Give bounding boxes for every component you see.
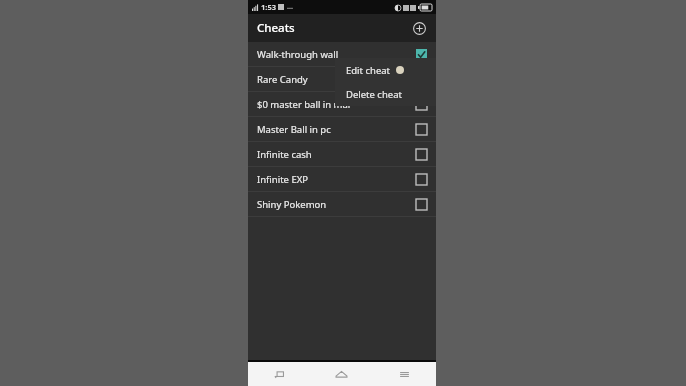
staticText: ...: [287, 2, 293, 12]
staticText: $0 master ball in mar: [257, 98, 352, 111]
button[interactable]: Infinite cash: [248, 142, 436, 166]
staticText: Walk-through wall: [257, 48, 339, 61]
button[interactable]: Edit cheat: [335, 58, 436, 82]
staticText: Infinite cash: [257, 148, 312, 161]
button[interactable]: Recent apps: [373, 362, 436, 386]
staticText: Infinite EXP: [257, 173, 308, 186]
staticText: Shiny Pokemon: [257, 198, 327, 211]
button[interactable]: $0 master ball in mar: [248, 92, 436, 116]
staticText: Master Ball in pc: [257, 123, 331, 136]
button[interactable]: Rare Candy: [248, 67, 436, 91]
button[interactable]: Shiny Pokemon: [248, 192, 436, 216]
button[interactable]: Infinite EXP: [248, 167, 436, 191]
button[interactable]: Home: [310, 362, 373, 386]
button[interactable]: Add cheat: [409, 18, 429, 38]
staticText: Edit cheat: [346, 64, 391, 77]
button[interactable]: Master Ball in pc: [248, 117, 436, 141]
button[interactable]: Back: [248, 362, 310, 386]
button[interactable]: Walk-through wall: [248, 42, 436, 66]
button[interactable]: Delete cheat: [335, 83, 436, 106]
staticText: Rare Candy: [257, 73, 308, 86]
staticText: Delete cheat: [346, 88, 402, 101]
staticText: 1:53: [261, 2, 276, 12]
staticText: Cheats: [257, 20, 295, 36]
